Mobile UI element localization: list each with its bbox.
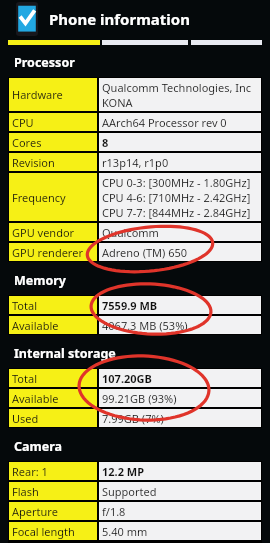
button[interactable]: Available — [8, 315, 262, 335]
staticText: Available — [12, 391, 59, 406]
staticText: Supported — [102, 484, 157, 499]
staticText: 12.2 MP — [102, 464, 145, 479]
button[interactable]: GPU renderer — [8, 242, 262, 262]
staticText: 99.21GB (93%) — [102, 391, 177, 406]
staticText: GPU renderer — [12, 245, 83, 260]
staticText: Used — [12, 411, 39, 426]
staticText: CPU — [12, 115, 34, 130]
staticText: Camera — [14, 438, 62, 455]
staticText: r13p14, r1p0 — [102, 155, 169, 170]
staticText: Available — [12, 318, 59, 333]
staticText: CPU 4-6: [710MHz - 2.42GHz] — [102, 190, 251, 205]
staticText: Revision — [12, 155, 55, 170]
staticText: Flash — [12, 484, 39, 499]
button[interactable]: Total — [8, 295, 262, 315]
button[interactable]: Aperture — [8, 501, 262, 521]
other: Phone information — [16, 2, 38, 36]
staticText: Processor — [14, 54, 75, 71]
staticText: f/1.8 — [102, 504, 126, 519]
staticText: Rear: 1 — [12, 464, 48, 479]
staticText: 8 — [102, 135, 109, 150]
button[interactable]: Rear: 1 — [8, 461, 262, 481]
button[interactable]: Revision — [8, 152, 262, 172]
staticText: Total — [12, 298, 37, 313]
staticText: AArch64 Processor rev 0 — [102, 115, 227, 130]
button[interactable]: Flash — [8, 481, 262, 501]
staticText: 7.99GB (7%) — [102, 411, 164, 426]
staticText: 4067.3 MB (53%) — [102, 318, 188, 333]
staticText: 107.20GB — [102, 371, 152, 386]
staticText: Total — [12, 371, 37, 386]
staticText: Frequency — [12, 190, 66, 205]
staticText: Focal length — [12, 524, 75, 539]
staticText: KONA — [102, 95, 133, 110]
staticText: Phone information — [49, 9, 190, 29]
staticText: Qualcomm — [102, 225, 159, 240]
staticText: Memory — [14, 272, 66, 289]
button[interactable]: GPU vendor — [8, 222, 262, 242]
staticText: Qualcomm Technologies, Inc — [102, 80, 252, 95]
button[interactable]: Available — [8, 388, 262, 408]
staticText: GPU vendor — [12, 225, 75, 240]
staticText: 5.40 mm — [102, 524, 148, 539]
staticText: CPU 7-7: [844MHz - 2.84GHz] — [102, 205, 251, 220]
button[interactable]: Cores — [8, 132, 262, 152]
button[interactable]: Hardware — [8, 77, 262, 112]
staticText: Internal storage — [14, 345, 116, 362]
button[interactable]: CPU — [8, 112, 262, 132]
staticText: Cores — [12, 135, 42, 150]
button[interactable]: Total — [8, 368, 262, 388]
staticText: Aperture — [12, 504, 58, 519]
staticText: 7559.9 MB — [102, 298, 158, 313]
button[interactable]: Phone information — [0, 0, 270, 38]
staticText: Adreno (TM) 650 — [102, 245, 188, 260]
button[interactable]: Frequency — [8, 172, 262, 222]
button[interactable]: Used — [8, 408, 262, 428]
staticText: Hardware — [12, 87, 63, 102]
staticText: CPU 0-3: [300MHz - 1.80GHz] — [102, 175, 251, 190]
button[interactable]: Focal length — [8, 521, 262, 541]
